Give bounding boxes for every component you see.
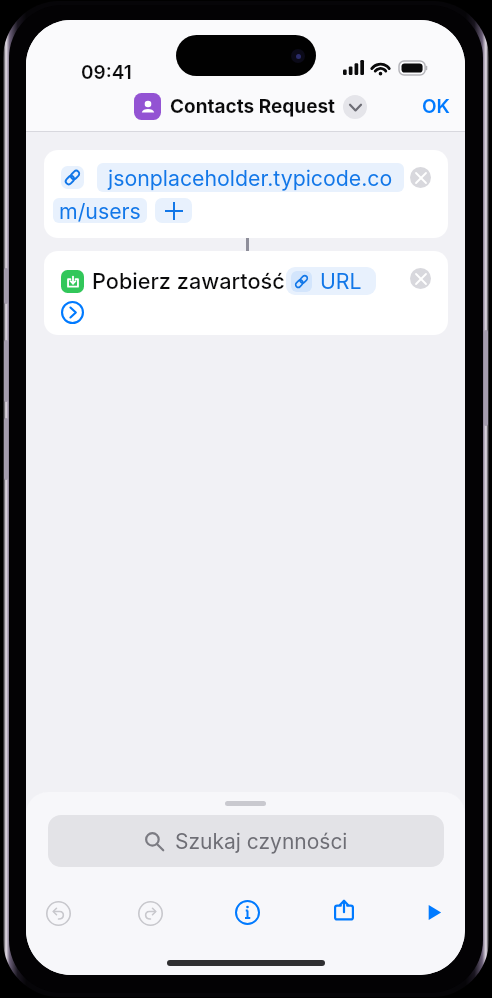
staticText: Contacts Request — [170, 95, 336, 118]
staticText: m/users — [59, 198, 141, 223]
button[interactable]: URL — [286, 267, 376, 295]
staticText: Szukaj czynności — [175, 829, 348, 854]
staticText: OK — [422, 95, 450, 118]
button[interactable]: Contacts Request — [134, 93, 367, 120]
button[interactable]: Szukaj czynności — [48, 815, 444, 867]
button[interactable]: Remove action — [410, 268, 431, 289]
staticText: jsonplaceholder.typicode.co — [108, 165, 393, 191]
staticText: Pobierz zawartość — [92, 268, 285, 294]
staticText: URL — [320, 268, 362, 294]
button[interactable]: Undo — [32, 890, 84, 936]
button[interactable]: jsonplaceholder.typicode.co — [44, 150, 448, 238]
button[interactable]: Pobierz zawartość — [44, 251, 448, 335]
button[interactable]: Show details — [343, 95, 367, 119]
button[interactable]: Add variable — [155, 198, 192, 223]
staticText: 09:41 — [81, 61, 132, 84]
button[interactable]: Remove action — [410, 167, 431, 188]
button[interactable]: OK — [407, 87, 465, 126]
button[interactable]: Redo — [124, 890, 176, 936]
button[interactable]: Expand action — [61, 301, 84, 324]
button[interactable]: Information — [221, 889, 273, 935]
button[interactable]: Share — [318, 889, 370, 935]
button[interactable]: Run shortcut — [406, 890, 458, 936]
